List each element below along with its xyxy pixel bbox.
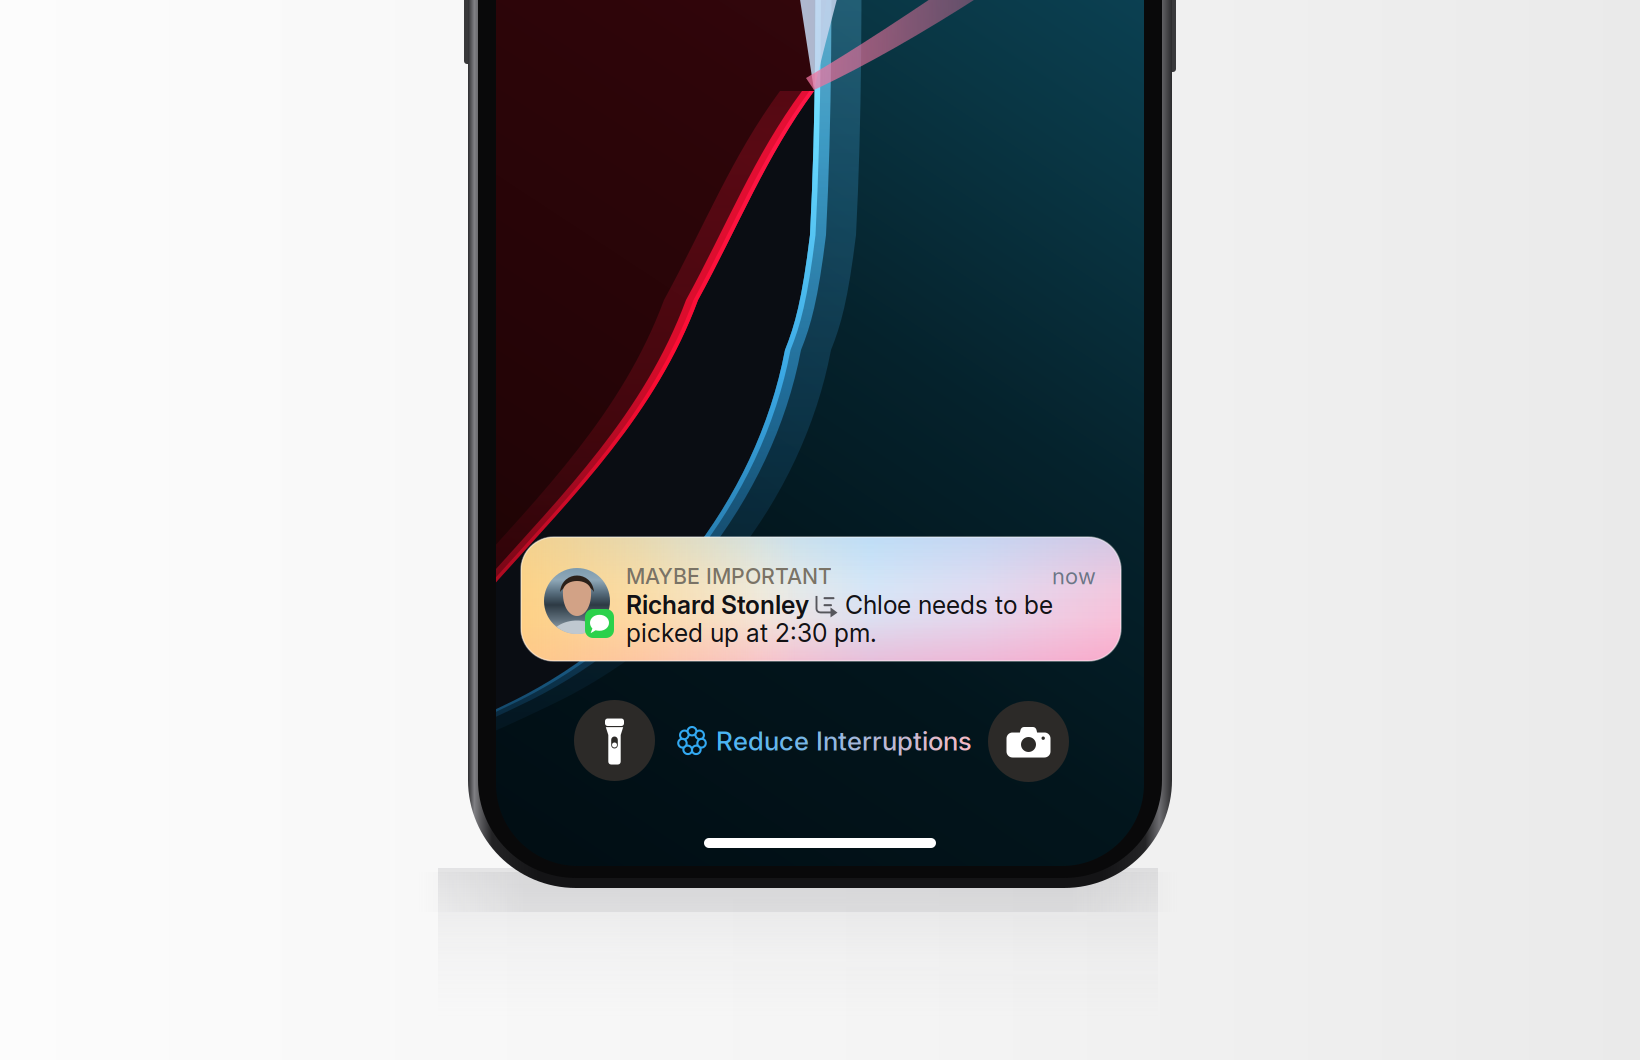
- staticText: t: [838, 725, 847, 757]
- staticText: t: [913, 725, 922, 757]
- staticText: d: [748, 725, 764, 757]
- button[interactable]: Camera: [988, 701, 1069, 782]
- button[interactable]: R: [677, 720, 972, 762]
- staticText: MAYBE IMPORTANT: [626, 563, 832, 589]
- staticText: c: [779, 725, 794, 757]
- staticText: e: [733, 725, 748, 757]
- staticText: R: [716, 725, 733, 757]
- staticText: e: [847, 725, 862, 757]
- staticText: s: [958, 725, 972, 757]
- staticText: u: [882, 725, 897, 757]
- staticText: now: [1052, 563, 1096, 590]
- staticText: o: [928, 725, 943, 757]
- staticText: u: [764, 725, 779, 757]
- staticText: picked up at 2:30 pm.: [626, 618, 877, 648]
- staticText: n: [823, 725, 838, 757]
- staticText: e: [794, 725, 809, 757]
- staticText: i: [922, 725, 928, 757]
- button[interactable]: Flashlight: [574, 700, 655, 781]
- staticText: p: [897, 725, 913, 757]
- staticText: r: [862, 725, 872, 757]
- staticText: r: [872, 725, 882, 757]
- staticText: Richard Stonley: [626, 590, 809, 620]
- staticText: n: [943, 725, 958, 757]
- staticText: I: [816, 725, 823, 757]
- button[interactable]: MAYBE IMPORTANT: [521, 537, 1121, 661]
- staticText: Chloe needs to be: [845, 590, 1053, 620]
